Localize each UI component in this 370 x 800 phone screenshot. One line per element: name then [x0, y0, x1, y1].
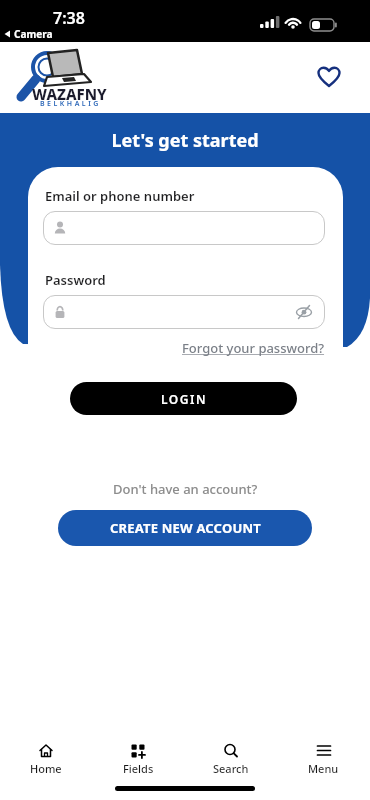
- staticText: WAZAFNY: [32, 84, 107, 104]
- staticText: BELKHALIG: [40, 99, 101, 109]
- staticText: LOGIN: [161, 391, 207, 407]
- staticText: Don't have an account?: [113, 480, 258, 498]
- button[interactable]: [43, 211, 325, 245]
- button[interactable]: LOGIN: [70, 382, 297, 415]
- button[interactable]: Search: [184, 735, 277, 785]
- staticText: Search: [213, 761, 249, 776]
- staticText: Let's get started: [0, 128, 370, 153]
- button[interactable]: Home: [0, 735, 92, 785]
- button[interactable]: CREATE NEW ACCOUNT: [58, 510, 312, 546]
- button[interactable]: [312, 60, 346, 92]
- button[interactable]: Fields: [92, 735, 184, 785]
- staticText: Camera: [14, 27, 53, 41]
- staticText: 7:38: [53, 7, 85, 29]
- button[interactable]: Menu: [277, 735, 370, 785]
- staticText: Menu: [308, 761, 339, 776]
- staticText: Email or phone number: [45, 187, 195, 205]
- button[interactable]: [43, 295, 325, 329]
- staticText: Fields: [123, 761, 154, 776]
- staticText: CREATE NEW ACCOUNT: [110, 519, 261, 537]
- staticText: Password: [45, 271, 106, 289]
- button[interactable]: Forgot your password?: [182, 339, 325, 357]
- staticText: Home: [30, 761, 62, 776]
